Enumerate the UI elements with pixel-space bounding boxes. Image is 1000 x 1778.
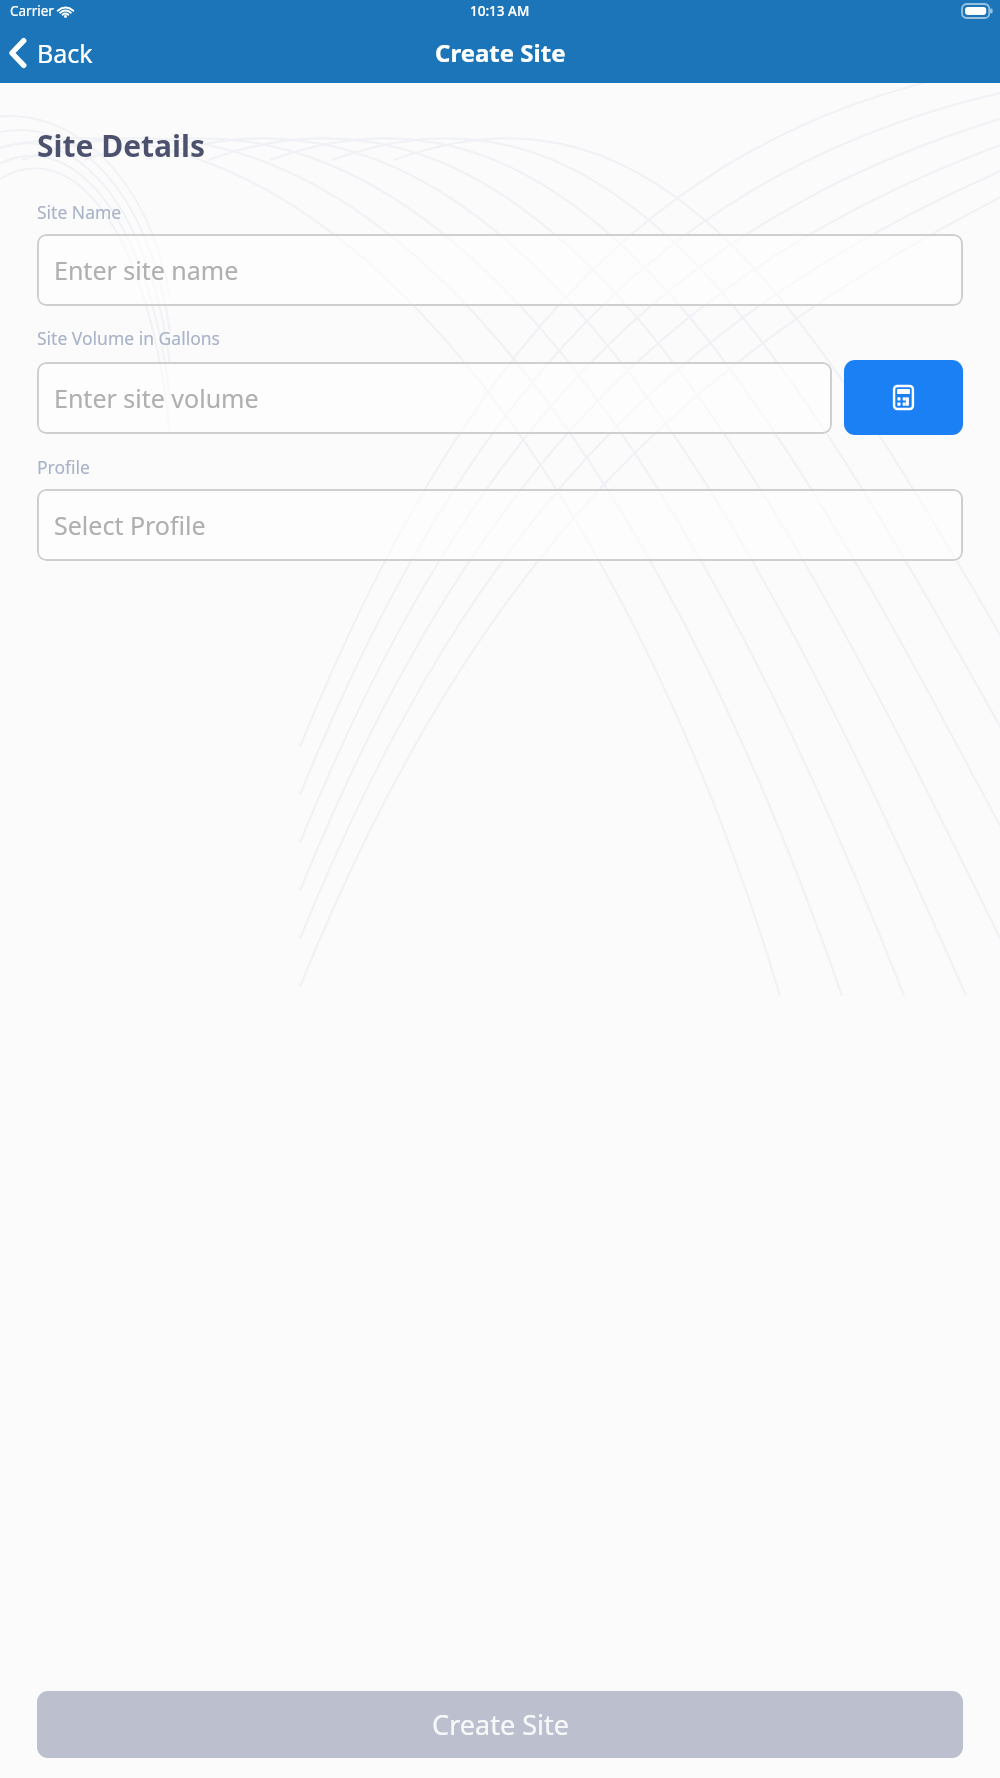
staticText: Back [37,36,93,70]
staticText: Enter site volume [54,381,259,415]
staticText: Site Details [37,125,206,166]
staticText: Create Site [432,1706,569,1743]
button[interactable]: Back [0,30,107,76]
staticText: Enter site name [54,253,239,287]
button[interactable]: Enter site name [37,234,963,306]
staticText: Site Volume in Gallons [37,326,220,350]
button[interactable]: Enter site volume [37,362,832,434]
staticText: Create Site [435,36,566,69]
staticText: Carrier [10,2,54,20]
button[interactable]: Select Profile [37,489,963,561]
staticText: Select Profile [54,508,206,542]
staticText: 10:13 AM [470,2,530,20]
staticText: Profile [37,455,90,479]
staticText: Site Name [37,200,122,224]
button[interactable]: Create Site [37,1691,963,1758]
button[interactable]: Open volume calculator [844,360,963,435]
